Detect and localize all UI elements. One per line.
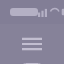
button[interactable]: Open navigation menu	[12, 24, 52, 64]
